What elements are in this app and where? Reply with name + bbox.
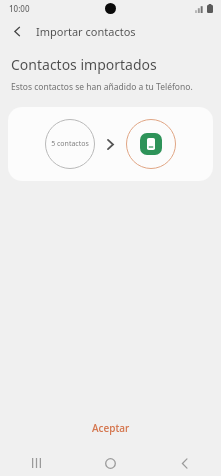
button[interactable]: 5 contactos	[8, 107, 213, 181]
button[interactable]: Recent apps	[0, 450, 73, 476]
button[interactable]: Back	[147, 450, 221, 476]
staticText: Estos contactos se han añadido a tu Telé…	[11, 81, 193, 93]
staticText: Importar contactos	[36, 24, 136, 39]
staticText: 5 contactos	[51, 139, 89, 149]
button[interactable]: Aceptar	[0, 415, 221, 441]
staticText: 10:00	[9, 3, 30, 14]
staticText: Contactos importados	[11, 55, 157, 74]
button[interactable]: Home	[73, 450, 147, 476]
staticText: Aceptar	[92, 421, 130, 435]
button[interactable]: Back	[4, 18, 30, 44]
